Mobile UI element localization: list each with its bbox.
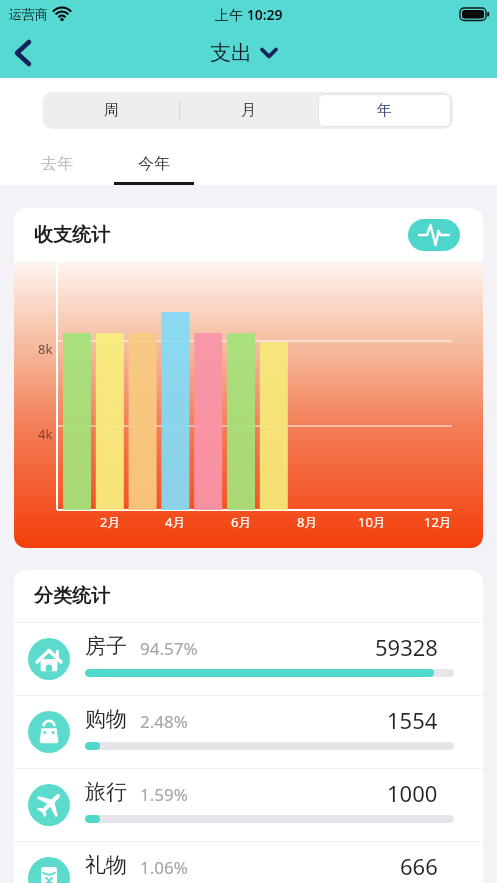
staticText: 8月 bbox=[297, 513, 318, 531]
staticText: 4k bbox=[38, 425, 53, 443]
button[interactable]: 房子 bbox=[14, 622, 483, 695]
staticText: 支出 bbox=[210, 40, 252, 66]
staticText: 分类统计 bbox=[34, 584, 110, 608]
staticText: 12月 bbox=[424, 513, 452, 531]
button[interactable]: 周 bbox=[43, 92, 179, 129]
button[interactable]: 去年 bbox=[17, 143, 97, 185]
staticText: 666 bbox=[400, 851, 438, 881]
staticText: 去年 bbox=[41, 154, 73, 174]
button[interactable]: 旅行 bbox=[14, 768, 483, 841]
staticText: 礼物 bbox=[85, 852, 127, 878]
staticText: 购物 bbox=[85, 706, 127, 732]
staticText: 运营商 bbox=[9, 6, 48, 22]
staticText: 10月 bbox=[358, 513, 386, 531]
staticText: 4月 bbox=[165, 513, 186, 531]
button[interactable]: 月 bbox=[180, 92, 316, 129]
staticText: 月 bbox=[241, 101, 256, 120]
staticText: 收支统计 bbox=[34, 223, 110, 247]
staticText: 周 bbox=[104, 101, 119, 120]
staticText: 1.06% bbox=[140, 856, 188, 879]
staticText: 1554 bbox=[387, 705, 438, 735]
button[interactable] bbox=[408, 219, 460, 251]
button[interactable]: 年 bbox=[318, 94, 451, 127]
button[interactable]: 购物 bbox=[14, 695, 483, 768]
button[interactable]: 支出 bbox=[210, 40, 278, 66]
staticText: 旅行 bbox=[85, 779, 127, 805]
staticText: 2.48% bbox=[140, 710, 188, 733]
staticText: 年 bbox=[377, 101, 392, 120]
staticText: 房子 bbox=[85, 633, 127, 659]
button[interactable] bbox=[8, 35, 38, 71]
staticText: 上午 10:29 bbox=[215, 5, 283, 24]
staticText: 2月 bbox=[100, 513, 121, 531]
staticText: 6月 bbox=[231, 513, 252, 531]
staticText: 1000 bbox=[387, 778, 438, 808]
staticText: 94.57% bbox=[140, 637, 198, 660]
button[interactable]: 今年 bbox=[114, 143, 194, 185]
button[interactable]: 礼物 bbox=[14, 841, 483, 883]
staticText: 1.59% bbox=[140, 783, 188, 806]
staticText: 今年 bbox=[138, 154, 170, 174]
staticText: 59328 bbox=[375, 632, 438, 662]
staticText: 8k bbox=[38, 340, 53, 358]
